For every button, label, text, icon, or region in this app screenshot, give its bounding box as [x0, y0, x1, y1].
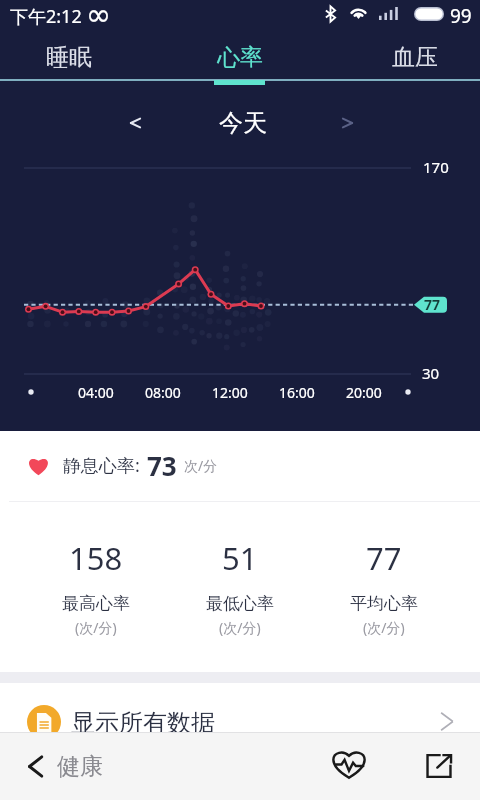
staticText: 30 [422, 363, 440, 383]
staticText: ∞ [86, 0, 111, 27]
staticText: 04:00 [78, 383, 114, 402]
button[interactable]: Previous day [100, 90, 170, 156]
staticText: 血压 [392, 43, 438, 72]
button[interactable]: 158 [24, 502, 168, 672]
button[interactable]: 显示所有数据 [0, 683, 480, 732]
staticText: 静息心率: [63, 453, 140, 478]
staticText: 睡眠 [46, 43, 92, 72]
staticText: (次/分) [363, 618, 405, 637]
staticText: 20:00 [346, 383, 382, 402]
button[interactable]: 心率 [184, 30, 296, 84]
button[interactable]: 77 [312, 502, 456, 672]
staticText: 99 [450, 3, 472, 29]
staticText: 心率 [217, 43, 263, 72]
staticText: 12:00 [212, 383, 248, 402]
staticText: 77 [424, 295, 441, 314]
staticText: 158 [69, 537, 123, 579]
staticText: 健康 [57, 752, 103, 781]
staticText: 最高心率 [62, 593, 130, 614]
button[interactable]: 51 [168, 502, 312, 672]
staticText: 下午2:12 [10, 4, 82, 29]
button[interactable]: Share [412, 739, 466, 793]
staticText: 73 [147, 448, 177, 483]
staticText: (次/分) [75, 618, 117, 637]
staticText: (次/分) [219, 618, 261, 637]
staticText: 08:00 [145, 383, 181, 402]
staticText: 77 [366, 537, 402, 579]
staticText: 平均心率 [350, 593, 418, 614]
button[interactable]: 睡眠 [13, 30, 125, 84]
staticText: 显示所有数据 [71, 708, 215, 738]
button[interactable]: 健康 [0, 733, 123, 800]
button[interactable]: Next day [312, 90, 382, 156]
staticText: 今天 [219, 108, 267, 138]
staticText: 170 [423, 157, 449, 177]
staticText: 最低心率 [206, 593, 274, 614]
button[interactable]: 血压 [359, 30, 471, 84]
staticText: 51 [222, 537, 258, 579]
staticText: 16:00 [279, 383, 315, 402]
staticText: 次/分 [184, 456, 218, 475]
button[interactable]: Heart rate [322, 737, 376, 791]
